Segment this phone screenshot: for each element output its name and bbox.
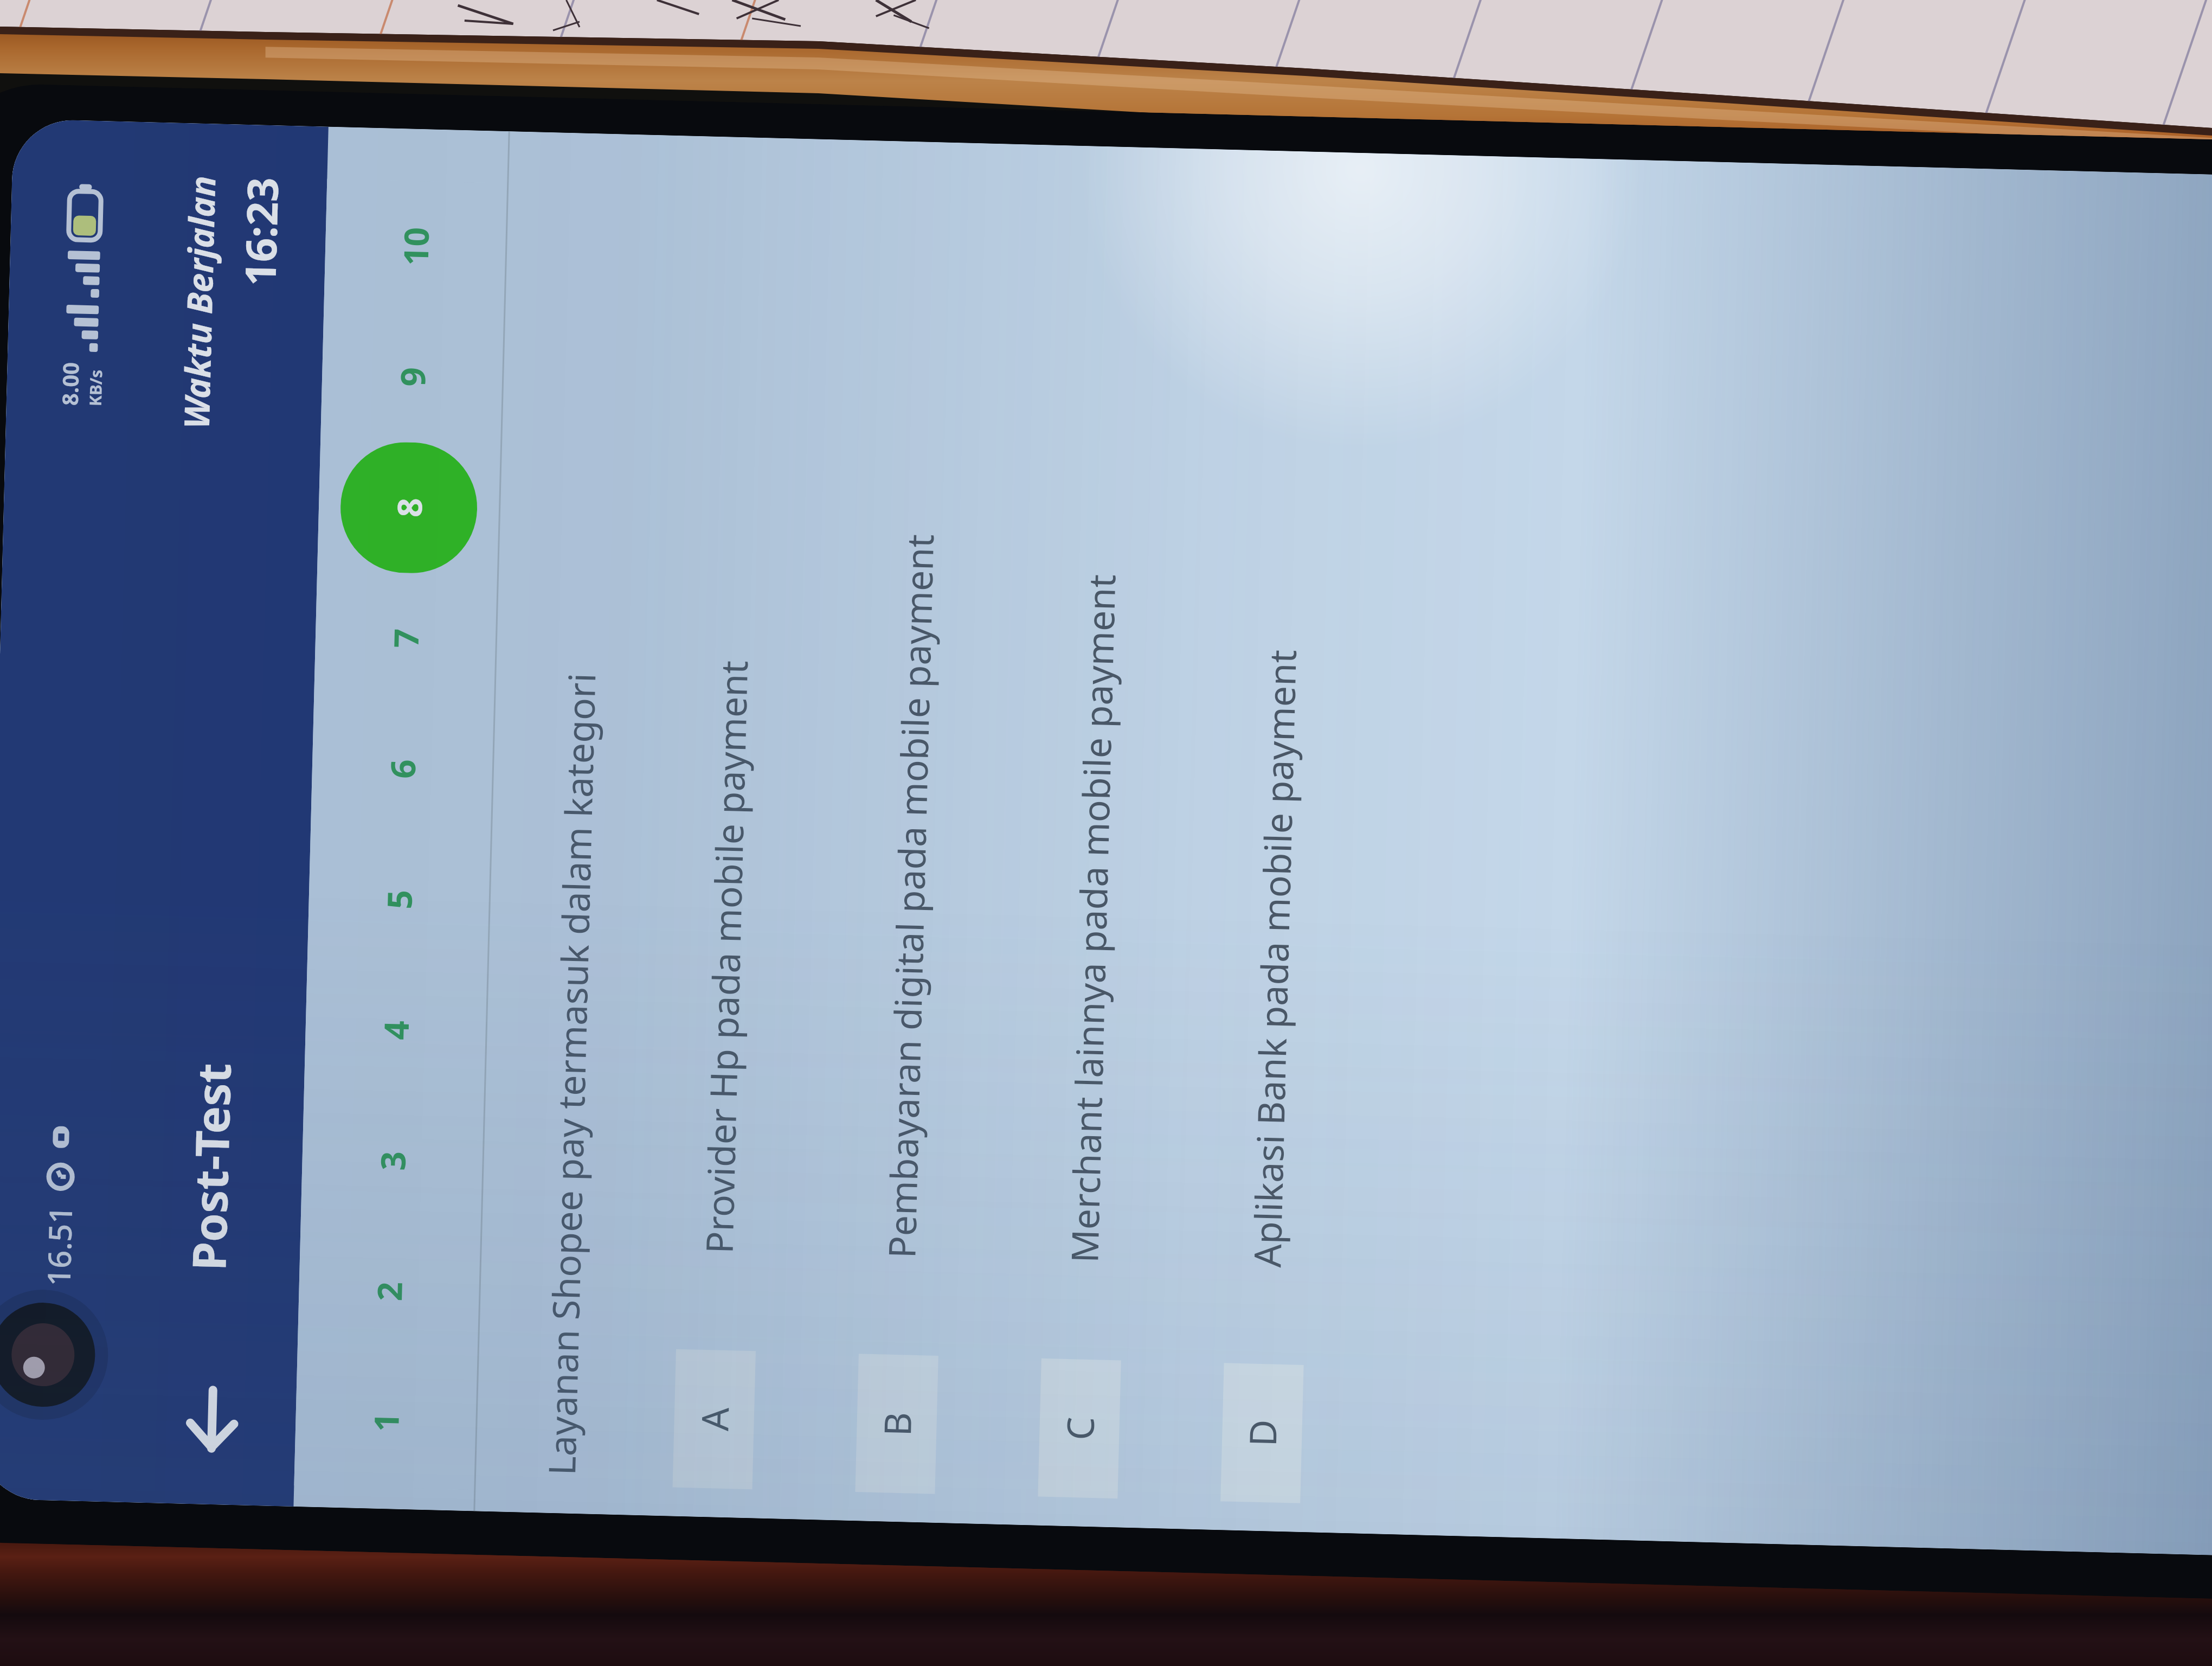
staticText: 5 <box>376 889 422 910</box>
staticText: 16:23 <box>231 176 291 287</box>
staticText: Aplikasi Bank pada mobile payment <box>1241 649 1307 1268</box>
staticText: C <box>1054 1416 1105 1441</box>
staticText: KB/s <box>84 369 107 406</box>
staticText: B <box>871 1411 922 1437</box>
staticText: Post-Test <box>176 1062 245 1271</box>
staticText: 4 <box>373 1020 419 1040</box>
button[interactable]: 10 <box>324 179 507 314</box>
button[interactable]: 4 <box>304 963 487 1098</box>
staticText: Layanan Shopee pay termasuk dalam katego… <box>536 672 606 1476</box>
button[interactable]: D <box>1221 172 1334 1503</box>
staticText: 7 <box>383 628 429 648</box>
button[interactable]: A <box>673 158 786 1489</box>
staticText: 9 <box>389 366 435 387</box>
button[interactable]: 6 <box>311 701 494 837</box>
button[interactable]: 9 <box>321 309 504 445</box>
button[interactable]: 5 <box>307 832 491 967</box>
staticText: Merchant lainnya pada mobile payment <box>1058 573 1126 1263</box>
staticText: 1 <box>363 1412 409 1432</box>
button[interactable]: 2 <box>297 1224 481 1359</box>
button[interactable]: 7 <box>314 571 497 706</box>
staticText: 8.00 <box>55 362 85 406</box>
button[interactable]: 3 <box>301 1093 484 1229</box>
button[interactable]: 1 <box>294 1355 477 1490</box>
button[interactable]: 8 <box>317 440 500 575</box>
button[interactable]: B <box>855 163 969 1494</box>
staticText: 8 <box>386 497 432 518</box>
staticText: Provider Hp pada mobile payment <box>693 660 759 1254</box>
staticText: 3 <box>369 1150 415 1171</box>
staticText: A <box>689 1406 740 1432</box>
button[interactable]: C <box>1038 167 1151 1499</box>
button[interactable]: Back <box>165 1373 259 1467</box>
staticText: Waktu Berjalan <box>172 175 226 429</box>
staticText: 6 <box>379 758 425 779</box>
staticText: 16.51 <box>37 1205 81 1287</box>
staticText: Pembayaran digital pada mobile payment <box>876 533 945 1259</box>
staticText: D <box>1237 1419 1288 1447</box>
staticText: 10 <box>392 227 439 266</box>
staticText: 2 <box>366 1281 412 1302</box>
